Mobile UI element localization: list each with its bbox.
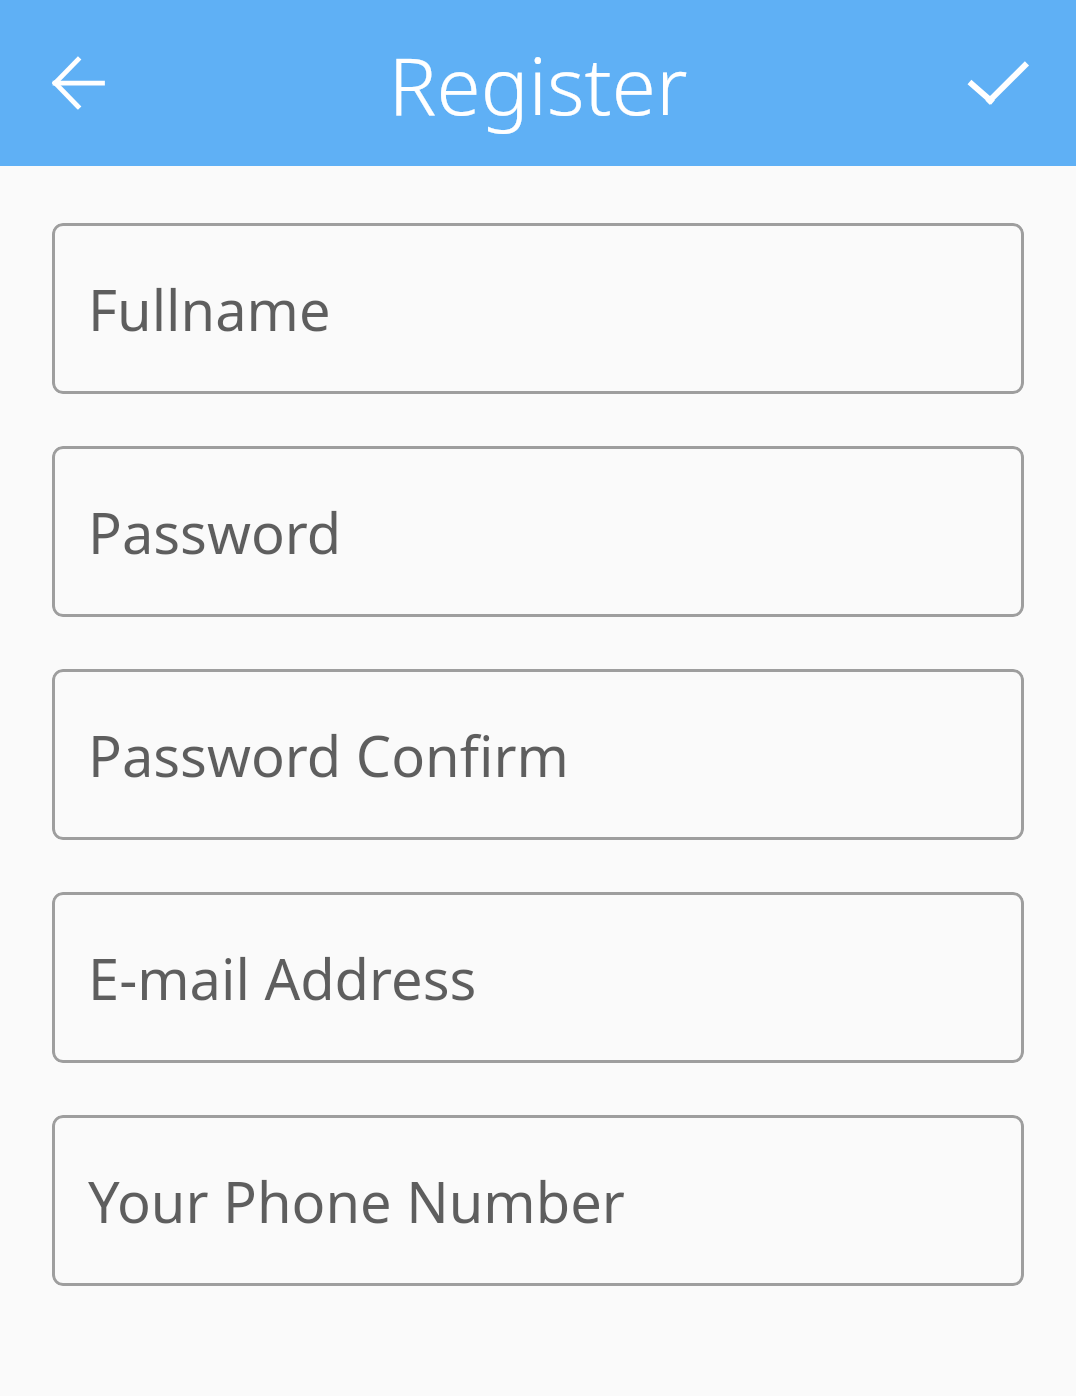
button[interactable]: Your Phone Number (52, 1115, 1024, 1286)
button[interactable]: Done (942, 27, 1054, 139)
staticText: Password Confirm (88, 717, 569, 793)
staticText: E-mail Address (88, 940, 477, 1016)
button[interactable]: E-mail Address (52, 892, 1024, 1063)
staticText: Your Phone Number (88, 1163, 625, 1239)
button[interactable]: Password Confirm (52, 669, 1024, 840)
staticText: Fullname (88, 271, 331, 347)
staticText: Register (0, 29, 1076, 138)
button[interactable]: Back (22, 27, 134, 139)
button[interactable]: Fullname (52, 223, 1024, 394)
staticText: Password (88, 494, 342, 570)
button[interactable]: Password (52, 446, 1024, 617)
